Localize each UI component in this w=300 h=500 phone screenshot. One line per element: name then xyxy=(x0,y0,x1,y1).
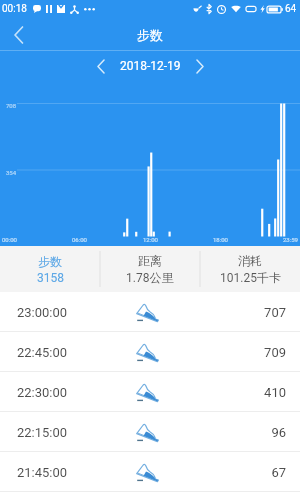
staticText: 步数 xyxy=(38,254,62,269)
staticText: 步数 xyxy=(137,27,163,43)
button[interactable]: 22:15:00 xyxy=(0,412,300,452)
staticText: 101.25千卡 xyxy=(220,270,281,285)
staticText: 22:30:00 xyxy=(17,385,68,400)
staticText: 64 xyxy=(285,3,297,15)
staticText: 354 xyxy=(6,169,17,176)
button[interactable]: Back xyxy=(0,18,38,51)
staticText: 22:15:00 xyxy=(17,425,68,440)
staticText: 00:18 xyxy=(2,3,27,15)
staticText: 消耗 xyxy=(238,253,262,268)
button[interactable]: Next day xyxy=(187,53,213,79)
button[interactable]: Previous day xyxy=(88,53,114,79)
staticText: 707 xyxy=(240,305,286,320)
button[interactable]: 步数 xyxy=(0,246,100,292)
button[interactable]: 消耗 xyxy=(200,246,300,292)
button[interactable]: 距离 xyxy=(100,246,200,292)
staticText: 3158 xyxy=(37,271,64,285)
staticText: 23:00:00 xyxy=(17,305,68,320)
staticText: 96 xyxy=(240,425,286,440)
staticText: 708 xyxy=(6,102,17,109)
staticText: 18:00 xyxy=(213,236,228,243)
button[interactable]: 22:45:00 xyxy=(0,332,300,372)
staticText: 06:00 xyxy=(72,236,87,243)
button[interactable]: 21:45:00 xyxy=(0,452,300,492)
staticText: 00:00 xyxy=(2,236,17,243)
staticText: 410 xyxy=(240,385,286,400)
staticText: 22:45:00 xyxy=(17,345,68,360)
button[interactable]: 22:30:00 xyxy=(0,372,300,412)
staticText: 1.78公里 xyxy=(126,270,174,285)
staticText: 67 xyxy=(240,465,286,480)
staticText: 2018-12-19 xyxy=(120,59,181,73)
staticText: 距离 xyxy=(138,253,162,268)
staticText: 709 xyxy=(240,345,286,360)
button[interactable]: 23:00:00 xyxy=(0,292,300,332)
staticText: 12:00 xyxy=(143,236,158,243)
staticText: 23:59 xyxy=(283,236,298,243)
staticText: 21:45:00 xyxy=(17,465,68,480)
